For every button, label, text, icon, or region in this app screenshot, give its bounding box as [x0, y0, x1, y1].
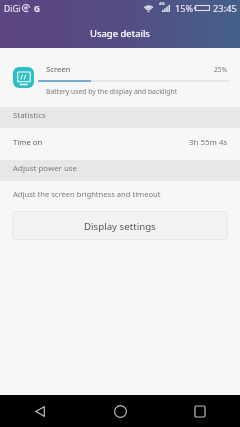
- staticText: Battery used by the display and backligh…: [46, 87, 178, 96]
- staticText: DiGi: [4, 3, 21, 15]
- staticText: Screen: [46, 64, 71, 74]
- staticText: Display settings: [84, 220, 156, 233]
- button[interactable]: Recents: [160, 395, 240, 427]
- button[interactable]: Display settings: [12, 211, 228, 240]
- button[interactable]: Time on: [0, 128, 240, 160]
- button[interactable]: Screen: [0, 48, 240, 107]
- staticText: G: [34, 3, 40, 14]
- staticText: 15%: [175, 2, 193, 14]
- button[interactable]: Back: [0, 395, 80, 427]
- staticText: Time on: [13, 137, 43, 147]
- staticText: 23:45: [213, 2, 237, 15]
- staticText: 4G: [159, 1, 165, 7]
- button[interactable]: Home: [80, 395, 160, 427]
- staticText: 3h 55m 4s: [189, 137, 228, 148]
- staticText: Adjust the screen brightness and timeout: [13, 189, 161, 199]
- staticText: Adjust power use: [13, 163, 78, 174]
- staticText: 25%: [214, 65, 228, 74]
- staticText: Statistics: [13, 110, 46, 121]
- staticText: Usage details: [90, 27, 150, 40]
